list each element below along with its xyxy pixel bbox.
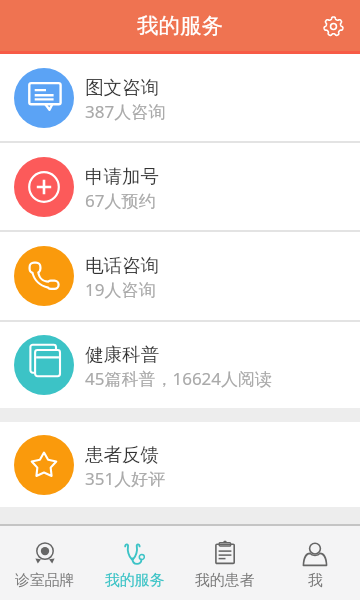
button[interactable]: Settings <box>315 8 351 44</box>
staticText: 387人咨询 <box>85 100 166 123</box>
staticText: 45篇科普，16624人阅读 <box>85 367 273 390</box>
staticText: 67人预约 <box>85 189 156 212</box>
button[interactable]: 申请加号 <box>0 143 360 230</box>
staticText: 351人好评 <box>85 467 166 490</box>
staticText: 申请加号 <box>85 165 159 188</box>
button[interactable]: 患者反馈 <box>0 422 360 507</box>
staticText: 电话咨询 <box>85 254 159 277</box>
staticText: 诊室品牌 <box>15 571 75 590</box>
staticText: 我的服务 <box>105 571 165 590</box>
button[interactable]: 电话咨询 <box>0 232 360 320</box>
staticText: 我的患者 <box>195 571 255 590</box>
button[interactable]: 图文咨询 <box>0 54 360 141</box>
staticText: 我 <box>308 571 323 590</box>
staticText: 19人咨询 <box>85 278 156 301</box>
button[interactable]: 诊室品牌 <box>0 526 90 600</box>
staticText: 我的服务 <box>137 12 223 39</box>
staticText: 图文咨询 <box>85 76 159 99</box>
button[interactable]: 我 <box>270 526 360 600</box>
staticText: 健康科普 <box>85 343 159 366</box>
button[interactable]: 健康科普 <box>0 322 360 408</box>
staticText: 患者反馈 <box>85 443 159 466</box>
button[interactable]: 我的患者 <box>180 526 270 600</box>
button[interactable]: 我的服务 <box>90 526 180 600</box>
